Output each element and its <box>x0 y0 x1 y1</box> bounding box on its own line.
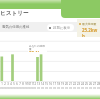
staticText: 9 <box>25 82 27 86</box>
staticText: 日 <box>15 86 18 89</box>
staticText: 22 <box>73 82 76 86</box>
staticText: 14 <box>41 82 44 86</box>
staticText: 19 <box>61 82 64 86</box>
staticText: 日 <box>6 86 9 89</box>
staticText: 5 <box>13 82 15 86</box>
staticText: 8 <box>22 82 24 86</box>
staticText: 日 <box>21 86 24 89</box>
staticText: 日 <box>37 86 40 89</box>
staticText: 日 <box>81 86 84 89</box>
staticText: 月別に表示 <box>53 26 71 30</box>
staticText: 日 <box>30 86 33 89</box>
staticText: 28 <box>97 82 100 86</box>
staticText: ヒストリー <box>0 10 29 17</box>
staticText: 日 <box>85 86 88 89</box>
staticText: 日 <box>65 86 68 89</box>
staticText: 日 <box>93 86 96 89</box>
staticText: 日 <box>9 86 12 89</box>
staticText: あなたの使用量 <box>29 44 46 50</box>
staticText: 24 <box>81 82 84 86</box>
staticText: 日 <box>97 86 100 89</box>
staticText: 28.1kwh <box>29 50 46 52</box>
staticText: 日 <box>0 86 3 89</box>
staticText: 日 <box>61 86 64 89</box>
staticText: 23 <box>77 82 80 86</box>
staticText: 日 <box>18 86 21 89</box>
staticText: 2 <box>4 82 6 86</box>
staticText: 電気の使用の推移 <box>2 25 30 29</box>
staticText: 6 <box>16 82 18 86</box>
staticText: 日 <box>69 86 72 89</box>
staticText: 日 <box>12 86 15 89</box>
staticText: 13 <box>37 82 40 86</box>
staticText: 16 <box>49 82 52 86</box>
staticText: 3 <box>7 82 9 86</box>
staticText: 日 <box>45 86 48 89</box>
staticText: 15 <box>45 82 48 86</box>
staticText: 日 <box>49 86 52 89</box>
staticText: 日 <box>27 86 30 89</box>
staticText: 日 <box>73 86 76 89</box>
staticText: 12 <box>33 82 36 86</box>
staticText: 26 <box>89 82 92 86</box>
staticText: 4 <box>10 82 12 86</box>
staticText: 日 <box>77 86 80 89</box>
button[interactable]: History tab <box>61 0 100 18</box>
staticText: 1 <box>1 82 3 86</box>
staticText: 日 <box>33 86 36 89</box>
staticText: 18 <box>57 82 60 86</box>
staticText: 7 <box>19 82 21 86</box>
staticText: 11 <box>30 82 33 86</box>
staticText: 日 <box>53 86 56 89</box>
staticText: 最大使用量 <box>82 22 97 26</box>
staticText: 27 <box>93 82 96 86</box>
staticText: 日 <box>41 86 44 89</box>
button[interactable]: 月別に表示 <box>47 24 74 31</box>
staticText: 日 <box>89 86 92 89</box>
staticText: 21 <box>69 82 72 86</box>
staticText: 25.2kwh <box>82 27 100 37</box>
staticText: 日 <box>57 86 60 89</box>
staticText: 日 <box>24 86 27 89</box>
staticText: 日 <box>3 86 6 89</box>
staticText: 10 <box>27 82 30 86</box>
staticText: 20 <box>65 82 68 86</box>
staticText: 17 <box>53 82 56 86</box>
staticText: 25 <box>85 82 88 86</box>
